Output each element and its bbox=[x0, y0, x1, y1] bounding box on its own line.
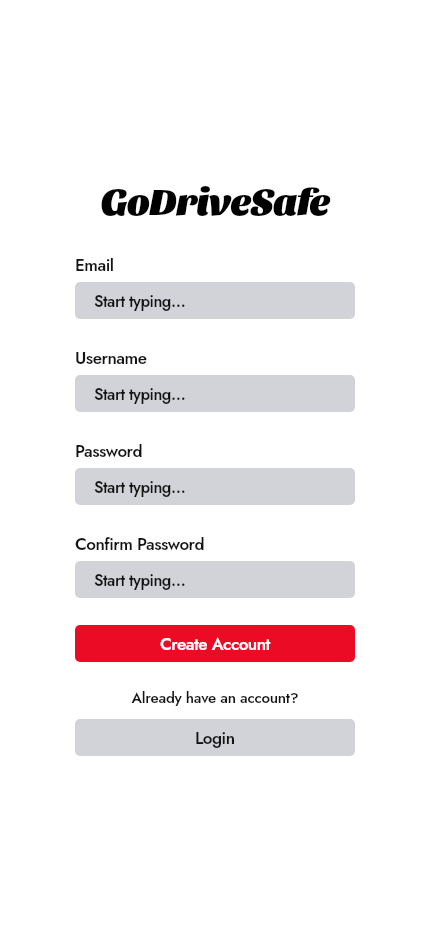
button[interactable]: Start typing… bbox=[75, 468, 355, 505]
staticText: Password bbox=[75, 439, 143, 464]
staticText: Start typing… bbox=[94, 476, 186, 499]
staticText: Email bbox=[75, 253, 114, 278]
staticText: GoDriveSafe bbox=[0, 176, 430, 222]
staticText: Login bbox=[195, 726, 235, 751]
button[interactable]: Start typing… bbox=[75, 282, 355, 319]
button[interactable]: Start typing… bbox=[75, 561, 355, 598]
staticText: Start typing… bbox=[94, 569, 186, 592]
button[interactable]: Start typing… bbox=[75, 375, 355, 412]
button[interactable]: Login bbox=[75, 719, 355, 756]
staticText: Start typing… bbox=[94, 290, 186, 313]
staticText: Start typing… bbox=[94, 383, 186, 406]
staticText: Create Account bbox=[160, 632, 270, 657]
staticText: Username bbox=[75, 346, 147, 371]
staticText: Confirm Password bbox=[75, 532, 205, 557]
staticText: Already have an account? bbox=[0, 687, 430, 709]
button[interactable]: Create Account bbox=[75, 625, 355, 662]
